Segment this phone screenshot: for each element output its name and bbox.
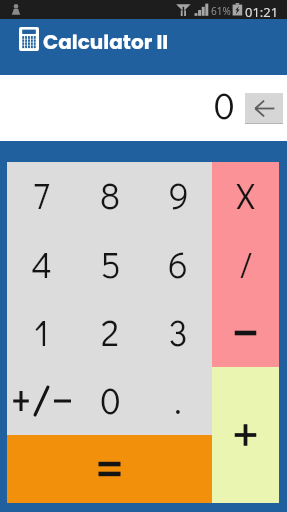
staticText: 0: [100, 376, 121, 423]
staticText: 5: [100, 240, 121, 287]
staticText: /: [239, 240, 253, 287]
staticText: 7: [33, 171, 50, 218]
button[interactable]: Backspace: [245, 93, 283, 123]
button[interactable]: 9: [144, 162, 212, 231]
button[interactable]: 8: [76, 162, 144, 231]
staticText: 2: [101, 308, 119, 355]
button[interactable]: Plus: [212, 367, 279, 503]
button[interactable]: Plus minus: [7, 367, 76, 435]
button[interactable]: 3: [144, 299, 212, 367]
staticText: .: [174, 376, 182, 423]
staticText: 0: [214, 80, 235, 129]
other: Calculator: [19, 27, 39, 51]
staticText: X: [236, 171, 255, 218]
button[interactable]: 2: [76, 299, 144, 367]
button[interactable]: X: [212, 162, 279, 231]
button[interactable]: 5: [76, 231, 144, 299]
staticText: 1: [34, 308, 49, 355]
staticText: 61%: [211, 4, 231, 18]
button[interactable]: 0: [76, 367, 144, 435]
button[interactable]: 7: [7, 162, 76, 231]
staticText: 8: [100, 171, 120, 218]
staticText: 6: [168, 240, 188, 287]
button[interactable]: 6: [144, 231, 212, 299]
staticText: 4: [31, 240, 52, 287]
button[interactable]: Equals: [7, 435, 212, 503]
button[interactable]: 4: [7, 231, 76, 299]
button[interactable]: 1: [7, 299, 76, 367]
staticText: 3: [168, 308, 188, 355]
staticText: 01:21: [245, 3, 279, 21]
button[interactable]: Calculator: [0, 19, 287, 75]
staticText: Calculator II: [43, 28, 169, 56]
button[interactable]: Minus: [212, 299, 279, 367]
button[interactable]: .: [144, 367, 212, 435]
staticText: 9: [168, 171, 189, 218]
button[interactable]: /: [212, 231, 279, 299]
